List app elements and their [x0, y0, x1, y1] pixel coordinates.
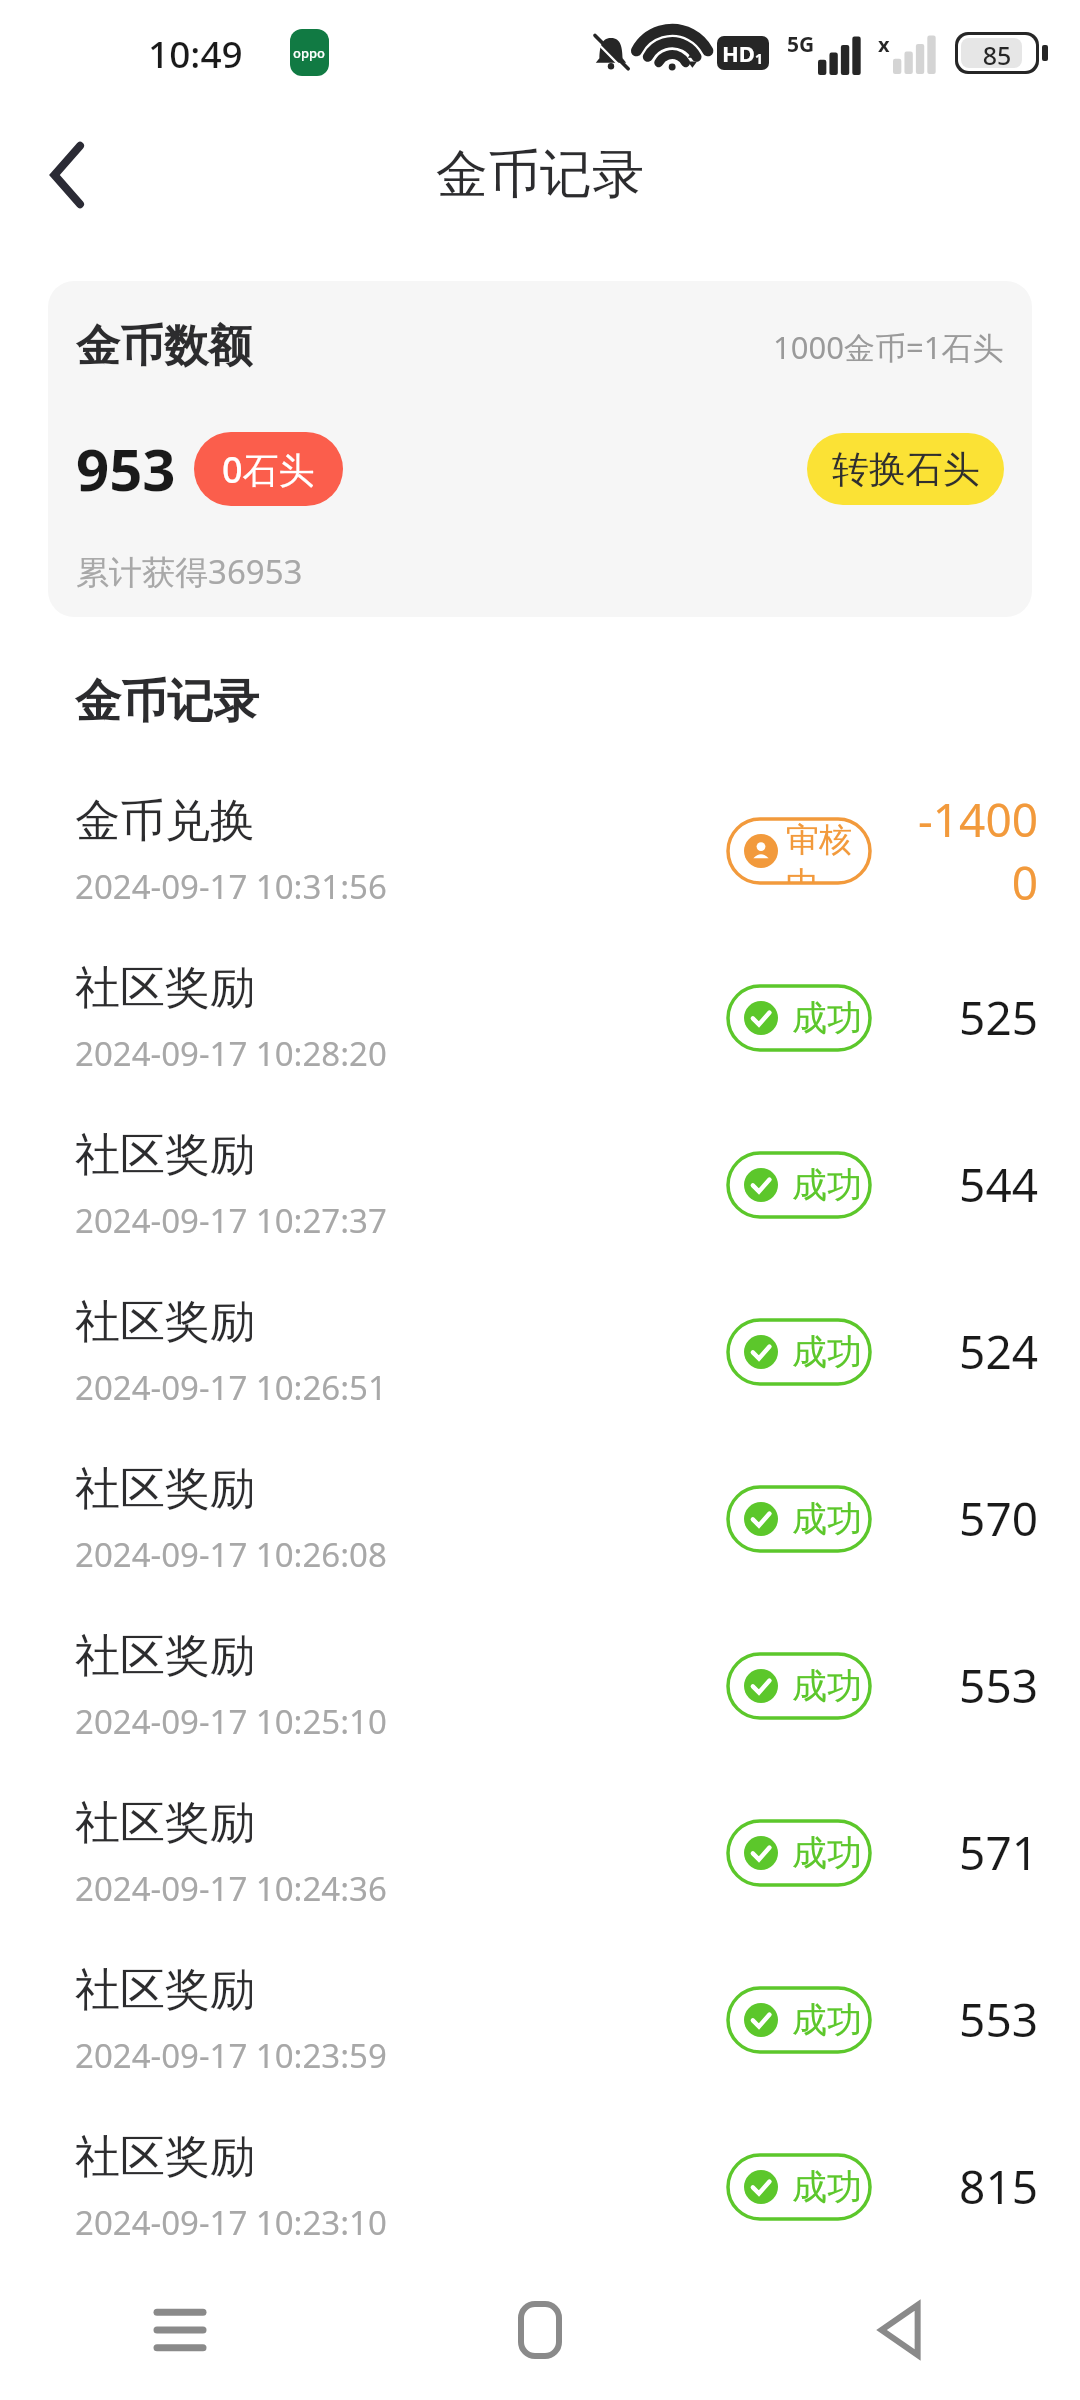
staticText: 2024-09-17 10:28:20 — [75, 1031, 387, 1076]
button[interactable]: Recents — [0, 2260, 360, 2400]
staticText: 2024-09-17 10:27:37 — [75, 1198, 387, 1243]
staticText: 2024-09-17 10:23:59 — [75, 2033, 387, 2078]
staticText: 524 — [959, 1320, 1038, 1383]
button[interactable]: 成功 — [728, 1153, 870, 1217]
staticText: 85 — [961, 38, 1033, 68]
staticText: 成功 — [792, 2165, 862, 2209]
staticText: 544 — [959, 1153, 1038, 1216]
staticText: 社区奖励 — [75, 2129, 255, 2186]
button[interactable]: 金币数额 — [48, 281, 1032, 617]
staticText: 社区奖励 — [75, 1795, 255, 1852]
button[interactable]: 转换石头 — [807, 433, 1004, 505]
button[interactable]: 社区奖励 — [0, 1602, 1080, 1769]
button[interactable]: 社区奖励 — [0, 934, 1080, 1101]
staticText: 525 — [959, 986, 1038, 1049]
staticText: -14000 — [900, 788, 1038, 914]
button[interactable]: 审核中 — [728, 819, 870, 883]
staticText: 金币记录 — [436, 142, 644, 208]
staticText: 2024-09-17 10:26:51 — [75, 1365, 387, 1410]
button[interactable]: 社区奖励 — [0, 1101, 1080, 1268]
staticText: 社区奖励 — [75, 1461, 255, 1518]
button[interactable]: 社区奖励 — [0, 2270, 1080, 2400]
button[interactable]: 成功 — [728, 1320, 870, 1384]
button[interactable]: 成功 — [728, 1988, 870, 2052]
staticText: 571 — [959, 1821, 1038, 1884]
staticText: 金币数额 — [76, 319, 252, 374]
button[interactable]: 社区奖励 — [0, 1936, 1080, 2103]
staticText: 社区奖励 — [75, 1127, 255, 1184]
staticText: x — [878, 31, 890, 58]
staticText: 社区奖励 — [75, 960, 255, 1017]
staticText: 成功 — [792, 1664, 862, 1708]
staticText: 2024-09-17 10:23:10 — [75, 2200, 387, 2245]
button[interactable]: 成功 — [728, 1487, 870, 1551]
staticText: 成功 — [792, 1163, 862, 1207]
staticText: 0石头 — [222, 445, 315, 494]
staticText: oppo — [293, 44, 326, 62]
button[interactable]: Home — [360, 2260, 720, 2400]
staticText: HD — [722, 38, 755, 68]
staticText: 553 — [959, 1654, 1038, 1717]
staticText: 审核中 — [786, 819, 870, 883]
staticText: 553 — [959, 1988, 1038, 2051]
staticText: 815 — [959, 2155, 1038, 2218]
staticText: 10:49 — [148, 28, 243, 78]
staticText: 转换石头 — [832, 446, 980, 493]
button[interactable]: 社区奖励 — [0, 1769, 1080, 1936]
staticText: 成功 — [792, 1330, 862, 1374]
button[interactable]: 0石头 — [194, 432, 343, 506]
staticText: 成功 — [792, 996, 862, 1040]
button[interactable]: 社区奖励 — [0, 1268, 1080, 1435]
staticText: 2024-09-17 10:31:56 — [75, 864, 387, 909]
button[interactable]: 成功 — [728, 986, 870, 1050]
staticText: 成功 — [792, 1831, 862, 1875]
button[interactable]: 社区奖励 — [0, 1435, 1080, 1602]
button[interactable]: 成功 — [728, 1654, 870, 1718]
staticText: 2024-09-17 10:24:36 — [75, 1866, 387, 1911]
staticText: 金币兑换 — [75, 793, 255, 850]
button[interactable]: 社区奖励 — [0, 2103, 1080, 2270]
staticText: 1 — [755, 49, 764, 68]
staticText: 570 — [959, 1487, 1038, 1550]
button[interactable]: Back — [720, 2260, 1080, 2400]
staticText: 社区奖励 — [75, 1294, 255, 1351]
button[interactable]: Back — [18, 125, 118, 225]
staticText: 社区奖励 — [75, 2277, 255, 2334]
staticText: 社区奖励 — [75, 1628, 255, 1685]
staticText: 2024-09-17 10:26:08 — [75, 1532, 387, 1577]
staticText: 成功 — [792, 1998, 862, 2042]
button[interactable]: 成功 — [728, 2155, 870, 2219]
staticText: 成功 — [792, 1497, 862, 1541]
staticText: 2024-09-17 10:22:31 — [75, 2348, 387, 2393]
staticText: 5G — [787, 30, 815, 59]
staticText: 累计获得36953 — [76, 549, 303, 594]
staticText: 1000金币=1石头 — [773, 326, 1004, 368]
staticText: 2024-09-17 10:25:10 — [75, 1699, 387, 1744]
button[interactable]: 金币兑换 — [0, 767, 1080, 934]
staticText: 社区奖励 — [75, 1962, 255, 2019]
button[interactable]: 成功 — [728, 1821, 870, 1885]
staticText: 953 — [76, 429, 176, 508]
staticText: 金币记录 — [75, 673, 259, 731]
